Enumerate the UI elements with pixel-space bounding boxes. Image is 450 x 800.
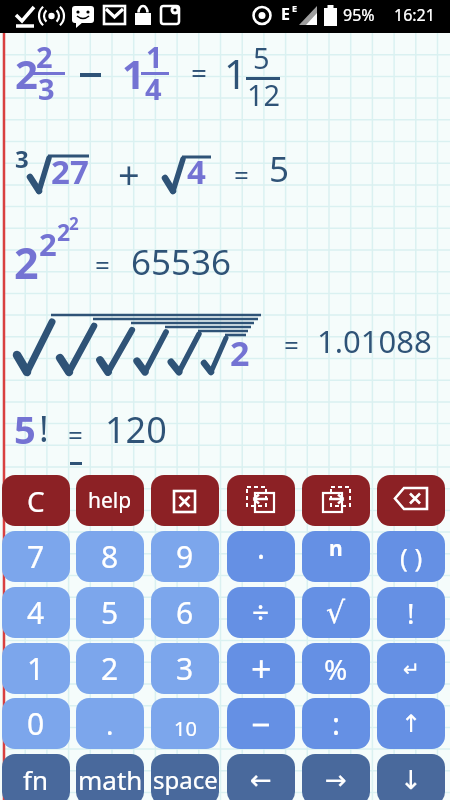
button[interactable]: · [227, 531, 295, 582]
staticText: ↵ [403, 657, 420, 680]
staticText: · [257, 536, 266, 577]
staticText: √ [326, 595, 346, 630]
staticText: 4 [187, 149, 206, 194]
staticText: 5 [269, 145, 290, 193]
staticText: = [234, 157, 249, 192]
staticText: 3 [38, 69, 55, 108]
button[interactable]: ( ) [377, 531, 445, 582]
staticText: ( ) [400, 539, 423, 574]
staticText: C [27, 482, 45, 520]
staticText: ← [250, 765, 272, 795]
button[interactable]: C [2, 475, 70, 526]
staticText: 5 [253, 38, 270, 77]
staticText: 1 [224, 46, 247, 100]
staticText: 6 [176, 592, 194, 633]
button[interactable]: 7 [2, 531, 70, 582]
button[interactable]: ÷ [227, 587, 295, 638]
button[interactable]: : [302, 698, 370, 749]
button[interactable]: space [151, 754, 219, 800]
staticText: 7 [27, 536, 45, 577]
button[interactable]: 2 [76, 643, 144, 694]
staticText: ÷ [252, 592, 270, 633]
staticText: n [329, 534, 343, 563]
staticText: = [191, 53, 208, 91]
staticText: 95% [343, 4, 375, 26]
button[interactable]: 1 [2, 643, 70, 694]
staticText: 2 [39, 223, 57, 265]
button[interactable]: 5 [76, 587, 144, 638]
button[interactable] [151, 475, 219, 526]
button[interactable]: 4 [2, 587, 70, 638]
staticText: = [284, 327, 299, 362]
staticText: 1 [146, 37, 163, 76]
button[interactable]: math [76, 754, 144, 800]
staticText: − [251, 701, 271, 747]
button[interactable]: + [227, 643, 295, 694]
staticText: fn [23, 762, 49, 797]
staticText: % [324, 650, 348, 688]
button[interactable]: 9 [151, 531, 219, 582]
staticText: 2 [57, 216, 71, 247]
button[interactable]: fn [2, 754, 70, 800]
staticText: 1.01088 [317, 320, 432, 362]
staticText: ! [39, 404, 49, 453]
staticText: 2 [230, 330, 250, 376]
button[interactable]: % [302, 643, 370, 694]
button[interactable]: ! [377, 587, 445, 638]
staticText: 3 [15, 142, 29, 175]
button[interactable]: 8 [76, 531, 144, 582]
staticText: E [281, 3, 290, 25]
staticText: 5 [14, 403, 36, 455]
staticText: 2 [69, 212, 79, 235]
staticText: 8 [101, 536, 119, 577]
staticText: 0 [27, 703, 45, 744]
button[interactable] [377, 475, 445, 526]
staticText: 2 [101, 648, 119, 689]
staticText: space [153, 763, 218, 796]
staticText: 16:21 [394, 4, 435, 26]
button[interactable]: 6 [151, 587, 219, 638]
staticText: 5 [101, 592, 119, 633]
staticText: 3 [176, 648, 194, 689]
staticText: + [251, 644, 272, 693]
button[interactable]: . [76, 698, 144, 749]
button[interactable]: − [227, 698, 295, 749]
staticText: 9 [176, 536, 194, 577]
staticText: E [292, 2, 298, 14]
staticText: 4 [27, 592, 45, 633]
staticText: 4 [145, 69, 162, 108]
button[interactable] [227, 475, 295, 526]
button[interactable]: help [76, 475, 144, 526]
staticText: 27 [51, 149, 89, 194]
button[interactable] [302, 475, 370, 526]
button[interactable]: 3 [151, 643, 219, 694]
staticText: + [118, 148, 140, 200]
button[interactable]: → [302, 754, 370, 800]
staticText: 120 [105, 405, 167, 454]
staticText: = [95, 247, 110, 282]
button[interactable]: 0 [2, 698, 70, 749]
button[interactable]: n [302, 531, 370, 582]
button[interactable]: ↵ [377, 643, 445, 694]
staticText: 12 [247, 75, 281, 114]
staticText: = [68, 417, 83, 452]
staticText: math [78, 762, 143, 797]
staticText: ↓ [400, 765, 422, 795]
staticText: . [106, 705, 114, 743]
staticText: ↑ [401, 710, 422, 738]
staticText: help [88, 486, 132, 515]
button[interactable]: 10 [151, 698, 219, 749]
staticText: 65536 [131, 238, 232, 286]
button[interactable]: ← [227, 754, 295, 800]
staticText: 1 [122, 46, 145, 100]
button[interactable]: ↓ [377, 754, 445, 800]
staticText: 2 [14, 233, 39, 292]
staticText: ! [407, 594, 415, 632]
staticText: : [332, 703, 341, 744]
staticText: 2 [15, 46, 38, 100]
button[interactable]: √ [302, 587, 370, 638]
staticText: 1 [27, 648, 45, 689]
staticText: 10 [174, 715, 197, 742]
button[interactable]: ↑ [377, 698, 445, 749]
staticText: → [325, 765, 347, 795]
